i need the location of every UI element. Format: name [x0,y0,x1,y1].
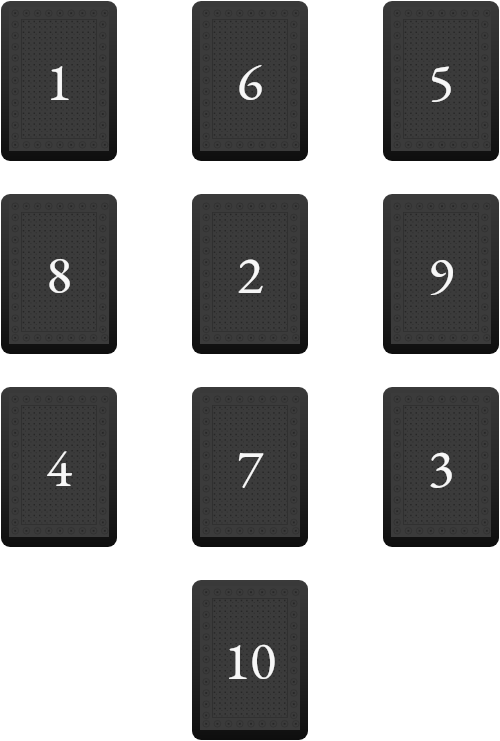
staticText: 5 [428,46,454,116]
staticText: 8 [46,239,72,309]
button[interactable]: 10 [192,580,308,740]
button[interactable]: 5 [383,1,499,161]
staticText: 2 [237,239,263,309]
staticText: 4 [46,432,72,502]
staticText: 6 [237,46,263,116]
button[interactable]: 7 [192,387,308,547]
button[interactable]: 3 [383,387,499,547]
staticText: 7 [237,432,263,502]
staticText: 9 [428,239,454,309]
button[interactable]: 2 [192,194,308,354]
button[interactable]: 9 [383,194,499,354]
button[interactable]: 6 [192,1,308,161]
staticText: 1 [46,46,72,116]
staticText: 3 [428,432,454,502]
button[interactable]: 4 [1,387,117,547]
button[interactable]: 8 [1,194,117,354]
staticText: 10 [224,625,276,695]
button[interactable]: 1 [1,1,117,161]
